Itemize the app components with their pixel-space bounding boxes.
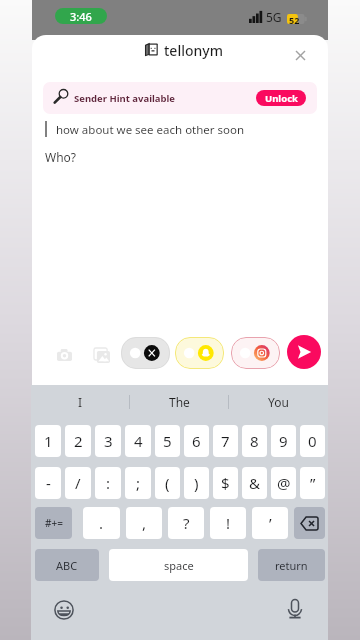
staticText: $ — [221, 473, 230, 493]
staticText: tellonym — [164, 41, 223, 60]
button[interactable]: Share toggle — [231, 337, 280, 369]
button[interactable]: $ — [213, 467, 238, 499]
button[interactable]: Gallery — [88, 341, 116, 369]
button[interactable]: , — [126, 507, 162, 539]
button[interactable]: ( — [155, 467, 180, 499]
staticText: : — [106, 473, 111, 493]
staticText: 52 — [289, 14, 300, 24]
button[interactable]: Camera — [50, 341, 78, 369]
button[interactable]: You — [229, 385, 328, 418]
staticText: ; — [136, 473, 141, 493]
staticText: 3:46 — [70, 9, 92, 24]
staticText: ’ — [269, 513, 272, 533]
button[interactable]: Close — [288, 43, 312, 67]
button[interactable]: ’ — [252, 507, 288, 539]
button[interactable]: - — [35, 467, 61, 499]
staticText: ) — [194, 473, 199, 493]
staticText: You — [268, 394, 289, 410]
button[interactable]: Send — [287, 335, 321, 369]
staticText: 9 — [279, 431, 288, 451]
staticText: / — [75, 473, 81, 493]
button[interactable]: The — [130, 385, 229, 418]
button[interactable]: 7 — [213, 425, 238, 457]
button[interactable]: ) — [184, 467, 209, 499]
staticText: return — [275, 558, 308, 573]
staticText: 8 — [250, 431, 259, 451]
button[interactable]: Emoji — [53, 599, 75, 621]
staticText: . — [99, 513, 104, 533]
button[interactable]: space — [109, 549, 248, 581]
button[interactable]: Share toggle — [121, 337, 170, 369]
staticText: 0 — [308, 431, 317, 451]
button[interactable]: Voice input — [283, 596, 307, 620]
button[interactable]: ABC — [35, 549, 99, 581]
button[interactable]: ? — [168, 507, 204, 539]
staticText: ? — [183, 513, 190, 533]
button[interactable]: Unlock — [256, 90, 306, 106]
staticText: & — [249, 473, 260, 493]
staticText: @ — [277, 473, 291, 493]
button[interactable]: ! — [210, 507, 246, 539]
button[interactable]: ; — [125, 467, 151, 499]
button[interactable]: 4 — [125, 425, 151, 457]
staticText: ABC — [56, 558, 78, 573]
button[interactable]: / — [65, 467, 91, 499]
button[interactable]: 6 — [184, 425, 209, 457]
staticText: 1 — [44, 431, 53, 451]
button[interactable]: @ — [271, 467, 296, 499]
button[interactable]: . — [83, 507, 120, 539]
button[interactable]: Backspace — [294, 507, 325, 539]
button[interactable]: 0 — [300, 425, 325, 457]
staticText: 5 — [163, 431, 172, 451]
button[interactable]: 8 — [242, 425, 267, 457]
button[interactable]: I — [31, 385, 130, 418]
button[interactable]: 3 — [95, 425, 121, 457]
staticText: 4 — [134, 431, 143, 451]
button[interactable]: 5 — [155, 425, 180, 457]
button[interactable]: return — [258, 549, 325, 581]
button[interactable]: 2 — [65, 425, 91, 457]
staticText: 5G — [266, 9, 282, 25]
staticText: , — [142, 513, 147, 533]
button[interactable]: : — [95, 467, 121, 499]
staticText: I — [78, 394, 83, 410]
staticText: how about we see each other soon — [56, 122, 245, 138]
button[interactable]: & — [242, 467, 267, 499]
staticText: space — [164, 558, 194, 573]
staticText: 2 — [74, 431, 83, 451]
button[interactable]: ” — [300, 467, 325, 499]
staticText: #+= — [45, 516, 63, 530]
button[interactable]: #+= — [35, 507, 72, 539]
staticText: ! — [226, 513, 231, 533]
staticText: - — [46, 473, 51, 493]
staticText: The — [169, 394, 190, 410]
staticText: 3 — [104, 431, 113, 451]
button[interactable]: Share toggle — [175, 337, 224, 369]
staticText: Sender Hint available — [74, 92, 176, 105]
button[interactable]: 1 — [35, 425, 61, 457]
button[interactable]: 9 — [271, 425, 296, 457]
staticText: 7 — [221, 431, 230, 451]
staticText: ( — [165, 473, 170, 493]
staticText: ” — [310, 473, 316, 493]
staticText: Unlock — [265, 92, 298, 105]
button[interactable]: Sender Hint available — [43, 82, 317, 114]
staticText: 6 — [192, 431, 201, 451]
staticText: Who? — [45, 149, 77, 165]
